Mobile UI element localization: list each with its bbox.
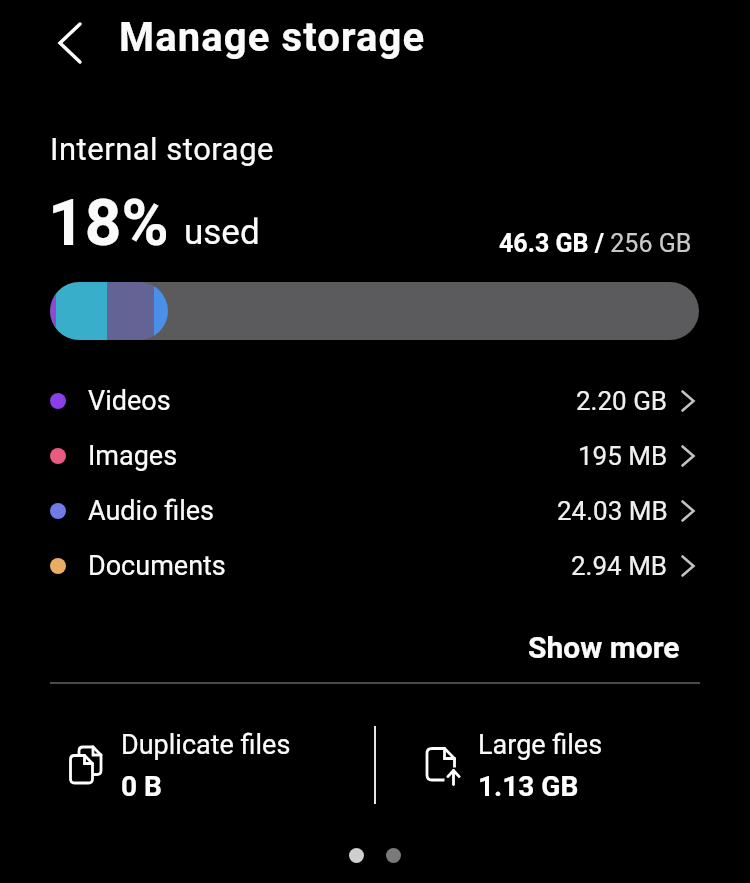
staticText: 1.13 GB (478, 770, 579, 803)
staticText: Images (88, 440, 178, 472)
button[interactable]: Videos (0, 373, 750, 428)
staticText: used (184, 212, 260, 253)
staticText: 24.03 MB (557, 496, 668, 526)
staticText: Duplicate files (121, 729, 291, 761)
button[interactable]: Audio files (0, 483, 750, 538)
staticText: Audio files (88, 495, 215, 527)
staticText: 2.94 MB (571, 551, 668, 581)
button[interactable] (48, 16, 92, 70)
staticText: Manage storage (119, 14, 426, 61)
staticText: 18% (48, 186, 169, 261)
button[interactable]: Large files (407, 715, 717, 815)
staticText: 46.3 GB / 256 GB (499, 229, 692, 258)
staticText: Show more (528, 630, 680, 665)
button[interactable]: Duplicate files (50, 715, 360, 815)
button[interactable]: Images (0, 428, 750, 483)
staticText: Documents (88, 550, 226, 582)
staticText: Internal storage (50, 131, 274, 167)
button[interactable]: Show more (528, 630, 680, 665)
staticText: 195 MB (578, 441, 668, 471)
staticText: 0 B (121, 770, 162, 803)
staticText: Videos (88, 385, 171, 417)
staticText: 2.20 GB (576, 386, 668, 416)
staticText: Large files (478, 729, 603, 761)
button[interactable]: Documents (0, 538, 750, 593)
